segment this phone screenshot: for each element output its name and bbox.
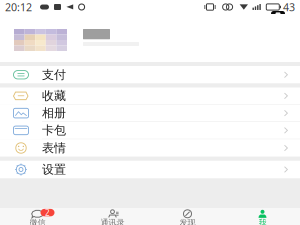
button[interactable]: 卡包: [0, 122, 300, 139]
staticText: 我: [258, 218, 266, 225]
staticText: 发现: [179, 218, 195, 225]
button[interactable]: 相册: [0, 105, 300, 122]
staticText: 2: [45, 207, 50, 218]
button[interactable]: 发现: [150, 208, 225, 225]
button[interactable]: 通讯录: [75, 208, 150, 225]
button[interactable]: 设置: [0, 161, 300, 178]
staticText: 通讯录: [100, 218, 124, 225]
staticText: 支付: [42, 67, 66, 82]
staticText: 设置: [42, 162, 66, 177]
button[interactable]: 表情: [0, 139, 300, 157]
staticText: 43: [283, 0, 295, 14]
staticText: 表情: [42, 141, 66, 155]
staticText: 相册: [42, 106, 66, 120]
staticText: 微信: [29, 218, 45, 225]
staticText: 收藏: [42, 88, 66, 103]
staticText: 卡包: [42, 123, 66, 138]
button[interactable]: [0, 14, 300, 62]
button[interactable]: 2: [0, 208, 75, 225]
button[interactable]: 支付: [0, 66, 300, 83]
staticText: 20:12: [5, 0, 32, 14]
button[interactable]: 我: [225, 208, 300, 225]
button[interactable]: 收藏: [0, 87, 300, 105]
